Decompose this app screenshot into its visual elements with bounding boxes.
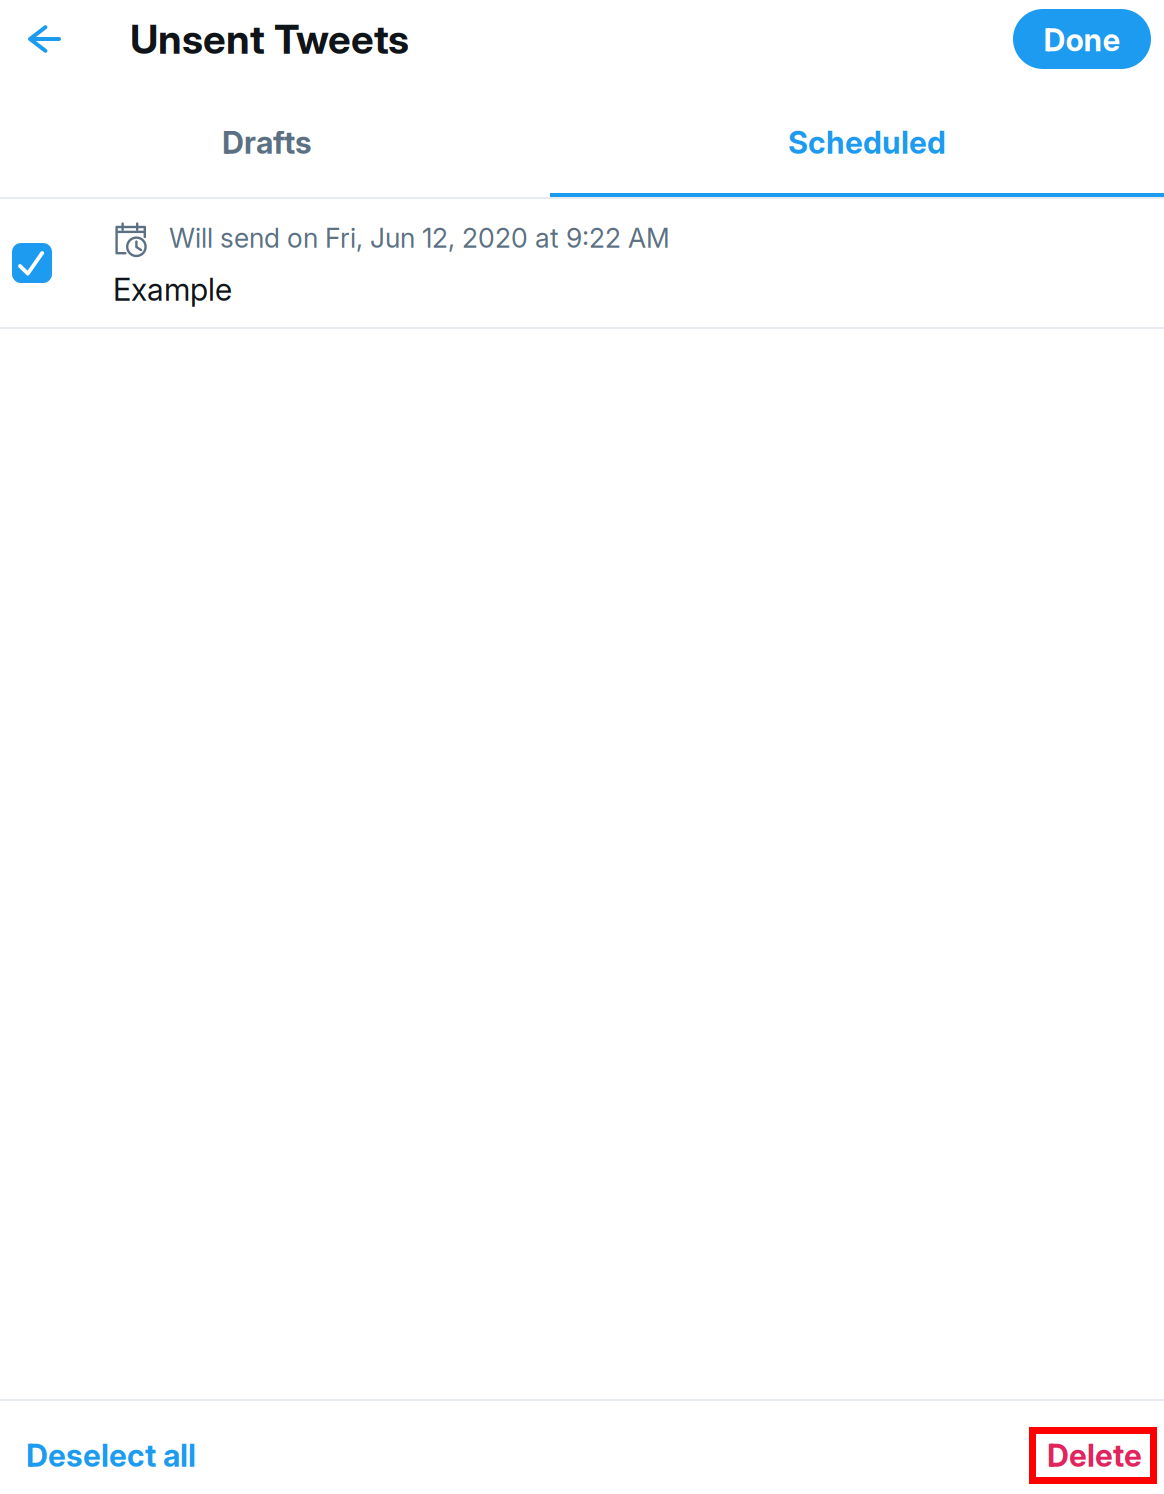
staticText: Deselect all <box>26 1437 196 1474</box>
staticText: Delete <box>1047 1437 1142 1474</box>
staticText: Scheduled <box>788 124 946 161</box>
button[interactable]: Will send on Fri, Jun 12, 2020 at 9:22 A… <box>0 198 1164 327</box>
button[interactable]: Done <box>1013 9 1151 69</box>
button[interactable]: Delete <box>1029 1427 1157 1484</box>
button[interactable]: Back <box>0 0 88 78</box>
button[interactable]: Scheduled <box>550 78 1164 198</box>
button[interactable]: Deselect all <box>0 1399 300 1494</box>
staticText: Example <box>113 271 232 308</box>
staticText: Done <box>1043 21 1120 58</box>
button[interactable]: Drafts <box>0 78 550 198</box>
staticText: Will send on Fri, Jun 12, 2020 at 9:22 A… <box>169 222 670 254</box>
staticText: Drafts <box>222 124 312 161</box>
staticText: Unsent Tweets <box>130 15 409 63</box>
